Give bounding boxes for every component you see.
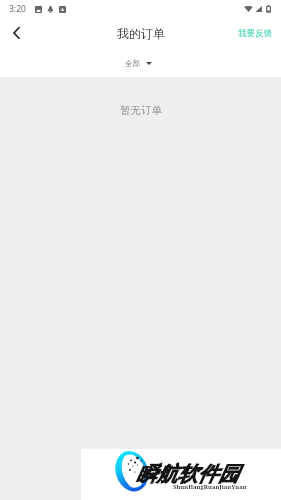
staticText: 全部 bbox=[125, 59, 140, 68]
staticText: 暂无订单 bbox=[120, 104, 162, 117]
button[interactable]: 我要反馈 bbox=[230, 22, 281, 46]
staticText: 瞬航软件园 bbox=[136, 461, 239, 487]
staticText: 3:20 bbox=[9, 3, 26, 15]
staticText: 我的订单 bbox=[117, 26, 165, 41]
button[interactable]: 全部 bbox=[117, 54, 160, 73]
staticText: ShunHangRuanJianYuan bbox=[173, 483, 247, 491]
staticText: 我要反馈 bbox=[238, 28, 272, 39]
button[interactable]: Back bbox=[0, 16, 32, 50]
